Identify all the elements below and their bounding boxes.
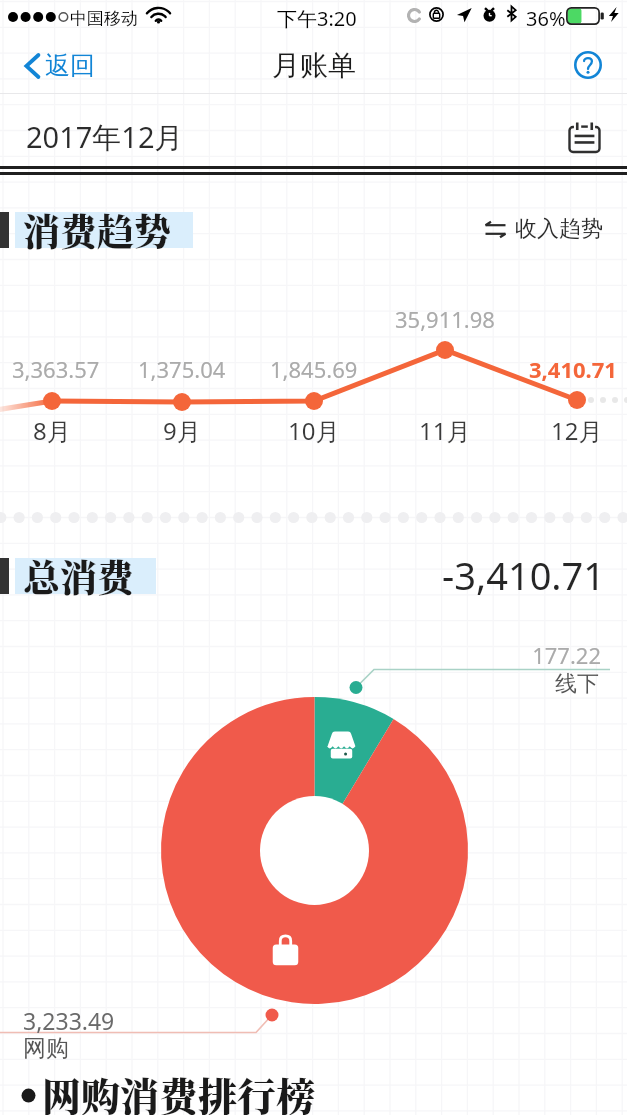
staticText: 36%	[526, 5, 566, 32]
staticText: 8月	[33, 414, 71, 447]
staticText: 网购	[23, 1034, 69, 1063]
button[interactable]: 返回	[0, 42, 107, 89]
staticText: 9月	[163, 414, 201, 447]
staticText: 月账单	[272, 48, 356, 83]
staticText: 1,845.69	[270, 354, 358, 384]
staticText: 总消费	[23, 549, 134, 602]
staticText: -3,410.71	[442, 549, 606, 601]
staticText: 下午3:20	[277, 5, 357, 32]
staticText: 3,363.57	[12, 354, 100, 384]
staticText: 2017年12月	[26, 117, 184, 157]
button[interactable]: Bill list	[562, 115, 606, 159]
staticText: 35,911.98	[395, 304, 495, 334]
button[interactable]: Help	[566, 43, 610, 87]
staticText: 3,410.71	[529, 354, 617, 384]
staticText: 11月	[419, 414, 471, 447]
staticText: 中国移动	[70, 8, 138, 29]
staticText: 网购消费排行榜	[42, 1066, 316, 1115]
staticText: 消费趋势	[23, 203, 171, 256]
staticText: 10月	[288, 414, 340, 447]
staticText: 线下	[330, 670, 599, 698]
staticText: 1,375.04	[138, 354, 226, 384]
staticText: 收入趋势	[515, 215, 603, 243]
staticText: 返回	[45, 50, 95, 81]
staticText: 3,233.49	[23, 1005, 115, 1036]
button[interactable]: 收入趋势	[481, 211, 607, 247]
staticText: 177.22	[330, 640, 601, 670]
staticText: 12月	[551, 414, 603, 447]
